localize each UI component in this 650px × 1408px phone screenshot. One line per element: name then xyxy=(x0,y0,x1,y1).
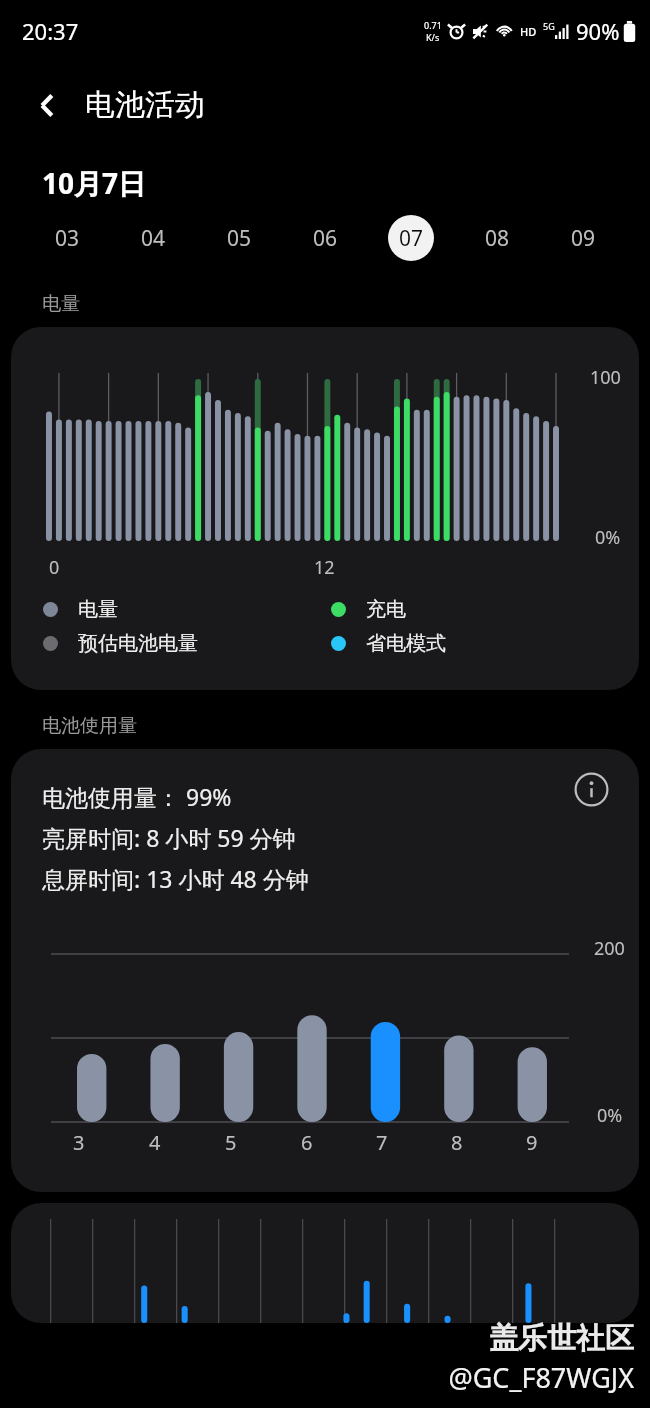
staticText: 9 xyxy=(526,1129,538,1156)
staticText: 7 xyxy=(376,1129,388,1156)
staticText: 盖乐世社区 xyxy=(489,1320,634,1357)
staticText: 电量 xyxy=(78,597,118,622)
staticText: 04 xyxy=(141,224,166,253)
staticText: 0% xyxy=(595,525,621,550)
staticText: 6 xyxy=(301,1129,313,1156)
button[interactable]: 09 xyxy=(540,213,626,263)
staticText: 省电模式 xyxy=(366,631,446,656)
button[interactable]: 06 xyxy=(282,213,368,263)
staticText: 0% xyxy=(597,1103,623,1128)
staticText: 电池使用量 xyxy=(42,714,137,738)
staticText: @GC_F87WGJX xyxy=(448,1359,634,1396)
staticText: 10月7日 xyxy=(42,164,147,202)
staticText: 亮屏时间: 8 小时 59 分钟 xyxy=(42,822,296,853)
staticText: 05 xyxy=(227,224,252,253)
staticText: 06 xyxy=(313,224,338,253)
staticText: 20:37 xyxy=(22,16,79,46)
staticText: 8 xyxy=(451,1129,463,1156)
staticText: 5 xyxy=(225,1129,237,1156)
staticText: 200 xyxy=(594,936,625,961)
staticText: 90% xyxy=(576,16,620,46)
button[interactable]: 信息 xyxy=(569,767,613,811)
staticText: 电池活动 xyxy=(85,86,205,124)
staticText: 100 xyxy=(590,365,621,390)
staticText: 0.71 xyxy=(424,19,442,31)
button[interactable]: 100 xyxy=(11,327,639,690)
staticText: HD xyxy=(520,24,537,39)
staticText: 0 xyxy=(49,555,60,580)
staticText: 充电 xyxy=(366,597,406,622)
staticText: 预估电池电量 xyxy=(78,631,198,656)
button[interactable]: 返回 xyxy=(23,81,71,129)
staticText: K/s xyxy=(426,31,440,43)
staticText: 4 xyxy=(149,1129,161,1156)
button[interactable]: 04 xyxy=(110,213,196,263)
staticText: 03 xyxy=(55,224,80,253)
staticText: 3 xyxy=(73,1129,85,1156)
staticText: 09 xyxy=(571,224,596,253)
staticText: 电量 xyxy=(42,292,80,316)
staticText: 电池使用量： 99% xyxy=(42,781,232,812)
staticText: 12 xyxy=(314,555,335,580)
button[interactable]: 08 xyxy=(454,213,540,263)
staticText: 07 xyxy=(399,224,424,253)
button[interactable]: 05 xyxy=(196,213,282,263)
button[interactable]: 03 xyxy=(24,213,110,263)
button[interactable]: 07 xyxy=(368,213,454,263)
staticText: 08 xyxy=(485,224,510,253)
staticText: 5G xyxy=(543,20,555,32)
staticText: 息屏时间: 13 小时 48 分钟 xyxy=(42,863,309,894)
